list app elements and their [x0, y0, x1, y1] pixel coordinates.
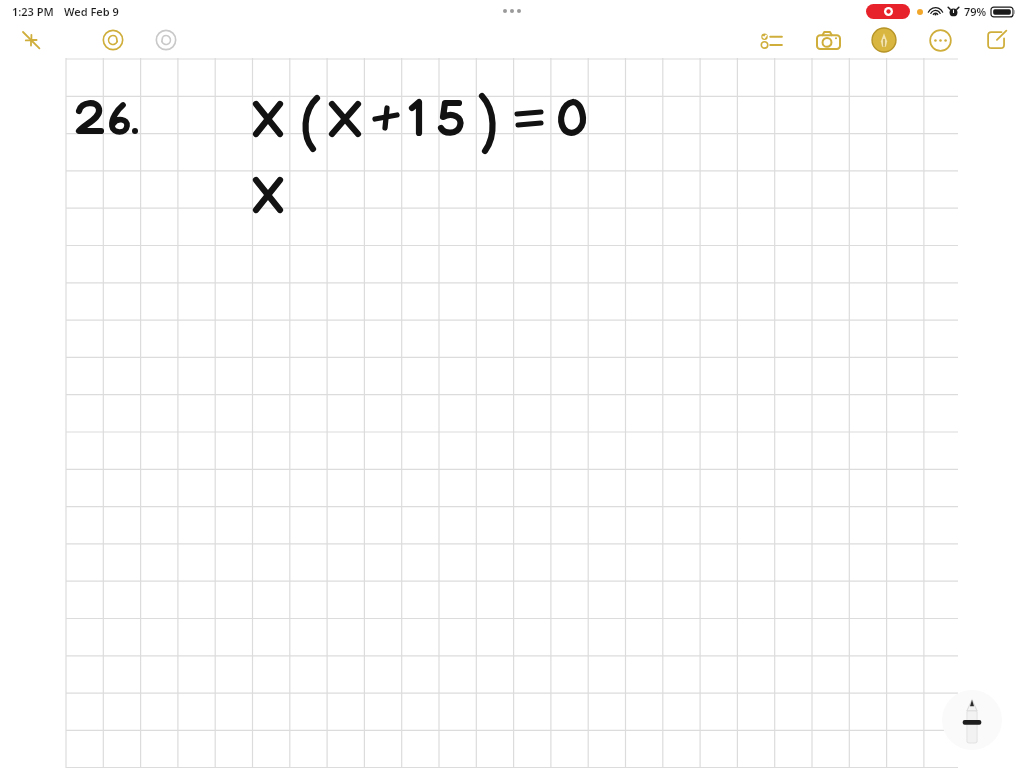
staticText: 1:23 PM: [12, 4, 54, 19]
button[interactable]: More options: [924, 24, 956, 56]
button[interactable]: Undo: [98, 25, 128, 55]
button[interactable]: Redo: [151, 25, 181, 55]
button[interactable]: Pen tool: [868, 24, 900, 56]
staticText: Wed Feb 9: [64, 4, 119, 19]
button[interactable]: Collapse: [16, 25, 46, 55]
button[interactable]: Checklist: [756, 24, 788, 56]
button[interactable]: Camera: [812, 24, 844, 56]
button[interactable]: Pencil tools: [942, 690, 1002, 750]
staticText: 79%: [964, 4, 987, 19]
button[interactable]: Compose: [980, 24, 1012, 56]
